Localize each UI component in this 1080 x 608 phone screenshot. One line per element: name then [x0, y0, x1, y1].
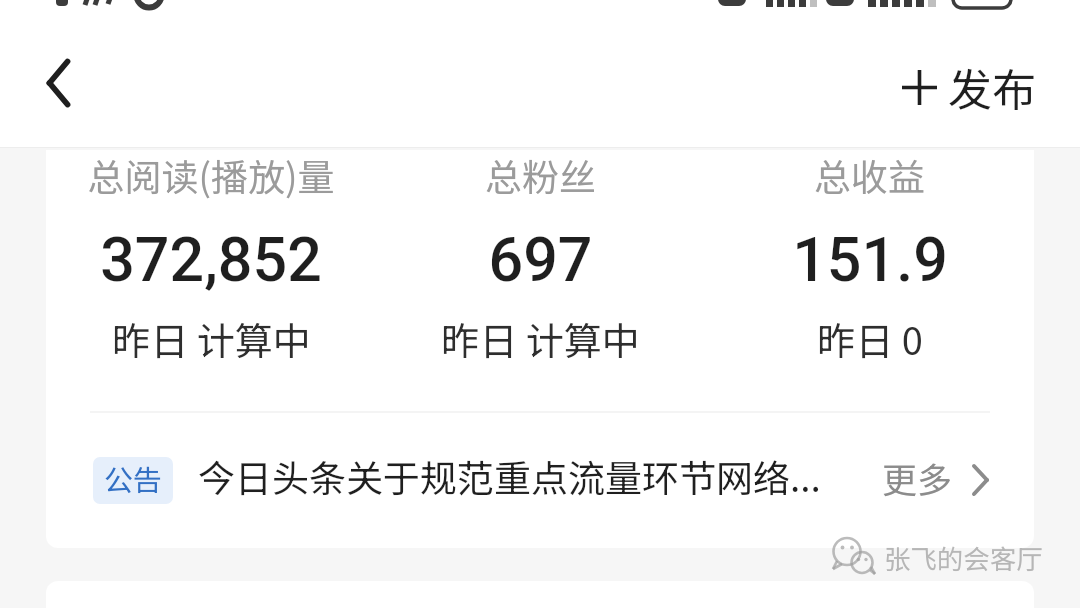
staticText: 昨日 计算中 [441, 311, 640, 366]
staticText: 697 [488, 224, 593, 295]
staticText: 公告 [104, 457, 163, 499]
staticText: 昨日 0 [817, 311, 923, 366]
button[interactable]: 公告 [46, 412, 1034, 548]
button[interactable]: Back [16, 48, 86, 118]
button[interactable]: 总阅读(播放)量 [46, 150, 376, 412]
staticText: 更多 [882, 452, 953, 503]
staticText: 总阅读(播放)量 [87, 150, 335, 202]
button[interactable]: 发布 [882, 45, 1080, 129]
staticText: 372,852 [100, 224, 322, 295]
staticText: 151.9 [792, 224, 948, 295]
staticText: 总粉丝 [485, 150, 596, 202]
staticText: 昨日 计算中 [112, 311, 311, 366]
staticText: 张飞的会客厅 [884, 538, 1043, 576]
staticText: 总收益 [814, 150, 925, 202]
staticText: 今日头条关于规范重点流量环节网络... [198, 449, 821, 503]
staticText: 发布 [948, 55, 1036, 119]
button[interactable]: 总粉丝 [376, 150, 705, 412]
button[interactable]: 总收益 [705, 150, 1034, 412]
